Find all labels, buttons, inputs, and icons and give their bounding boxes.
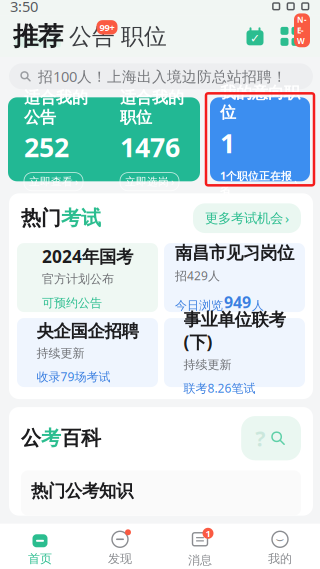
staticText: 1个职位正在报名 [220,169,292,196]
button[interactable]: 南昌市见习岗位 [164,243,305,312]
staticText: 事业单位联考(下) [183,309,285,353]
button[interactable]: 推荐 [10,19,66,53]
staticText: 收录79场考试 [36,369,110,384]
staticText: 首页 [28,551,52,566]
staticText: 消息 [188,553,212,567]
staticText: 可预约公告 [42,296,102,310]
staticText: 更多考试机会 [205,210,283,226]
staticText: 适合我的公告 [24,88,88,127]
button[interactable]: 我的意向职位 [210,97,310,181]
staticText: 今日浏览 [175,298,223,313]
button[interactable]: 公告 [66,19,118,53]
button[interactable]: ⌣ [240,524,320,569]
staticText: ✓ [250,31,260,45]
staticText: 我的意向职位 [220,83,300,122]
staticText: 热门公考知识 [31,480,133,502]
staticText: 1 [220,125,235,160]
staticText: 立即选岗 [125,175,169,188]
button[interactable]: 更多，有新内容 [270,19,310,53]
staticText: 立即查看 [29,175,73,188]
staticText: 招100人！上海出入境边防总站招聘！ [38,67,287,86]
button[interactable]: 日历 [240,19,270,53]
staticText: 推荐 [13,21,63,52]
staticText: 99+ [99,21,114,33]
staticText: › [294,174,298,190]
staticText: ? [255,424,265,452]
staticText: 考 [41,426,61,450]
staticText: › [285,209,289,227]
staticText: 南昌市见习岗位 [175,242,294,264]
staticText: 百科 [61,426,101,450]
staticText: 持续更新 [183,357,231,372]
button[interactable]: 适合我的公告 [8,105,104,173]
button[interactable]: 央企国企招聘 [17,318,158,387]
staticText: ⌣ [275,533,284,546]
staticText: 联考8.26笔试 [183,380,255,396]
button[interactable]: 发现 [80,524,160,569]
staticText: 央企国企招聘 [36,321,138,342]
button[interactable]: 2024年国考 [17,243,158,312]
staticText: 热门 [21,206,61,230]
button[interactable]: 适合我的职位 [104,105,200,173]
staticText: 考试 [61,206,101,230]
staticText: 官方计划公布 [42,272,114,286]
staticText: › [171,175,174,189]
staticText: 我的 [268,551,292,566]
button[interactable]: 更多考试机会 [193,203,301,233]
staticText: 949 [224,291,251,313]
staticText: 持续更新 [36,346,84,361]
staticText: 公告 [69,22,115,50]
staticText: 人 [252,298,264,313]
staticText: 1 [205,527,210,539]
button[interactable]: 热门公考知识 [21,470,301,516]
staticText: 公 [21,426,41,450]
button[interactable]: 1 [160,524,240,569]
staticText: 252 [24,129,69,165]
staticText: 发现 [108,551,132,566]
button[interactable]: 事业单位联考(下) [164,318,305,387]
staticText: 适合我的职位 [120,88,184,127]
staticText: NEW [297,14,307,46]
button[interactable]: 招100人！上海出入境边防总站招聘！ [9,63,313,89]
staticText: 招429人 [175,268,220,283]
button[interactable]: 职位 [118,19,170,53]
staticText: 2024年国考 [42,245,133,268]
button[interactable]: 首页 [0,524,80,569]
staticText: 3:50 [10,0,38,16]
staticText: › [75,175,78,189]
staticText: 职位 [121,22,167,50]
staticText: 1476 [120,129,180,165]
